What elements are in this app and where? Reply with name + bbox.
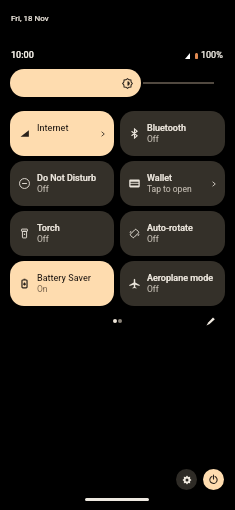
staticText: Tap to open: [147, 184, 192, 194]
staticText: Internet: [37, 123, 69, 134]
button[interactable]: Brightness: [10, 69, 141, 97]
staticText: Fri, 18 Nov: [11, 14, 49, 23]
button[interactable]: Torch: [10, 211, 114, 256]
staticText: Torch: [37, 223, 60, 234]
staticText: 100%: [201, 50, 223, 61]
staticText: Off: [37, 184, 49, 194]
button[interactable]: Power: [203, 469, 224, 490]
button[interactable]: Wallet: [120, 161, 225, 206]
staticText: On: [37, 284, 48, 294]
staticText: Aeroplane mode: [147, 273, 214, 284]
button[interactable]: Edit tiles: [202, 312, 220, 330]
staticText: 10:00: [11, 50, 34, 61]
staticText: Off: [147, 134, 159, 144]
staticText: Auto-rotate: [147, 223, 193, 234]
staticText: Off: [37, 234, 49, 244]
button[interactable]: Settings: [176, 469, 197, 490]
button[interactable]: Battery Saver: [10, 261, 114, 306]
button[interactable]: Bluetooth: [120, 111, 225, 156]
staticText: Wallet: [147, 173, 173, 184]
staticText: Off: [147, 284, 159, 294]
staticText: Off: [147, 234, 159, 244]
button[interactable]: Do Not Disturb: [10, 161, 114, 206]
button[interactable]: Internet: [10, 111, 114, 156]
button[interactable]: Auto-rotate: [120, 211, 225, 256]
button[interactable]: Aeroplane mode: [120, 261, 225, 306]
staticText: Do Not Disturb: [37, 173, 96, 184]
staticText: Battery Saver: [37, 273, 91, 284]
staticText: Bluetooth: [147, 123, 186, 134]
